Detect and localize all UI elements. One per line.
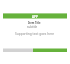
staticText: Supporting text goes here <box>15 32 55 36</box>
staticText: APP <box>32 15 38 19</box>
staticText: Item Title <box>28 21 41 25</box>
button[interactable]: APP <box>3 14 67 20</box>
staticText: subtitle <box>27 25 38 29</box>
